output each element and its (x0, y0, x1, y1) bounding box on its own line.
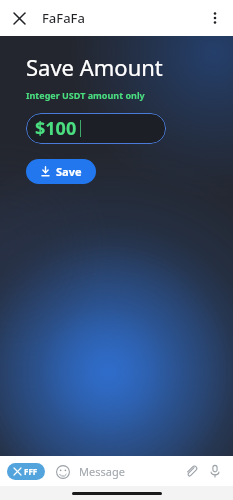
button[interactable]: Voice message (204, 460, 226, 482)
staticText: $100 (35, 116, 77, 141)
button[interactable]: Emoji (53, 462, 72, 481)
button[interactable]: Close (8, 7, 30, 29)
staticText: Save (56, 164, 82, 179)
staticText: Integer USDT amount only (26, 89, 145, 101)
button[interactable]: $100 (26, 113, 166, 144)
staticText: Message (79, 464, 125, 479)
button[interactable]: Attach (180, 460, 202, 482)
button[interactable]: Message (79, 459, 180, 483)
staticText: Save Amount (26, 52, 163, 82)
staticText: FaFaFa (42, 9, 85, 27)
button[interactable]: FFF (7, 463, 45, 480)
button[interactable]: Save (26, 159, 96, 184)
staticText: FFF (24, 466, 38, 477)
button[interactable]: More options (203, 6, 227, 30)
